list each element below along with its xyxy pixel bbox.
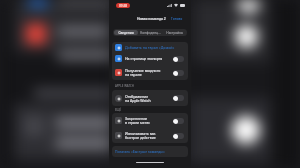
button[interactable]: Новая команда 2 [137, 16, 166, 21]
button[interactable]: Показать «Быстрые команды» [112, 146, 188, 157]
button[interactable]: Сведения [114, 30, 138, 35]
staticText: 09:38 [119, 4, 128, 8]
button[interactable]: Отображение на Apple Watch [112, 90, 188, 106]
staticText: Добавить на экран «Домой» [125, 45, 175, 50]
staticText: Показать «Быстрые команды» [115, 149, 165, 154]
staticText: Готово [171, 16, 183, 21]
staticText: Настройка [166, 31, 183, 35]
button[interactable]: Toggle [173, 56, 184, 62]
button[interactable]: Toggle [173, 133, 184, 139]
staticText: APPLE WATCH [115, 84, 134, 88]
button[interactable]: Toggle [173, 118, 184, 124]
button[interactable]: На странице экспорта [112, 52, 188, 65]
staticText: Отображение на Apple Watch [125, 94, 173, 103]
staticText: Закрепление в строке меню [125, 116, 173, 125]
button[interactable]: Использовать как быстрое действие [112, 128, 188, 143]
button[interactable]: Настройка [162, 30, 186, 35]
staticText: ЕЩЁ [115, 108, 122, 112]
button[interactable]: Добавить на экран «Домой» [112, 42, 188, 52]
button[interactable]: Готово [171, 16, 183, 21]
staticText: Конфиденц... [140, 31, 161, 35]
button[interactable]: Toggle [173, 95, 184, 101]
button[interactable]: Toggle [173, 70, 184, 76]
button[interactable]: Закрепление в строке меню [112, 113, 188, 128]
button[interactable]: Конфиденц... [138, 30, 162, 35]
staticText: Новая команда 2 [137, 16, 166, 21]
staticText: На странице экспорта [125, 56, 173, 61]
button[interactable]: Получение входного на экране [112, 65, 188, 80]
staticText: Получение входного на экране [125, 68, 173, 77]
staticText: Использовать как быстрое действие [125, 131, 173, 140]
staticText: Сведения [118, 31, 134, 35]
